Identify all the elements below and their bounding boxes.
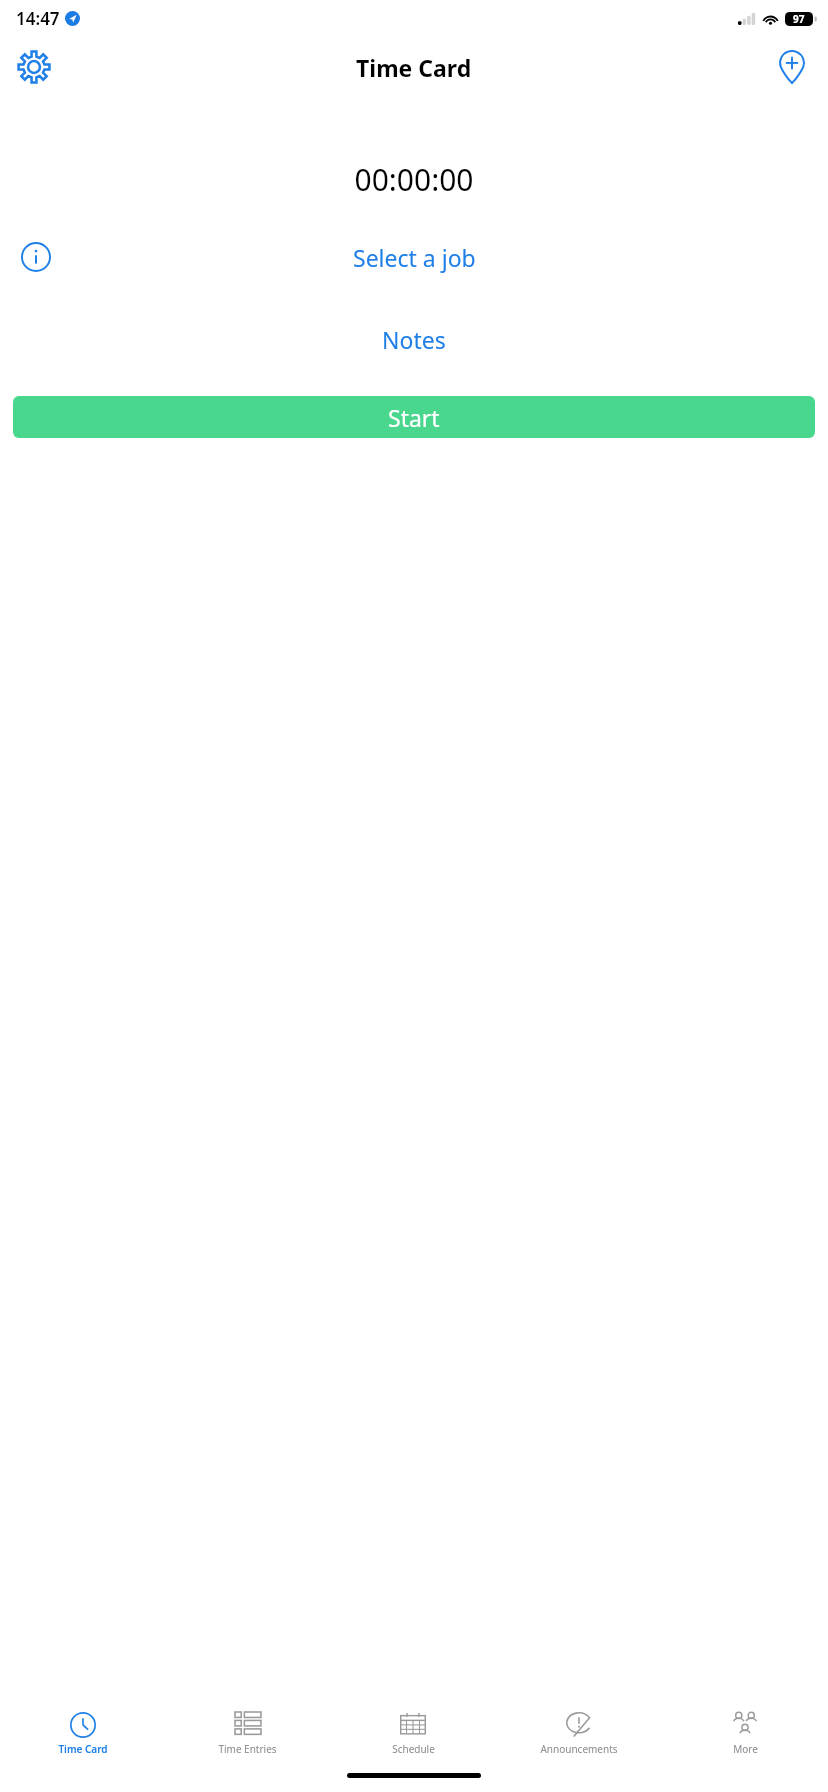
button[interactable]: Announcements: [496, 1702, 662, 1766]
staticText: Announcements: [540, 1742, 618, 1756]
staticText: 00:00:00: [354, 159, 474, 200]
staticText: 97: [793, 12, 805, 26]
button[interactable]: Notes: [360, 316, 468, 363]
button[interactable]: Start: [13, 396, 815, 438]
button[interactable]: Job information: [14, 235, 58, 279]
button[interactable]: Settings: [10, 43, 58, 91]
button[interactable]: More: [662, 1702, 828, 1766]
staticText: Time Entries: [218, 1742, 277, 1756]
staticText: Time Card: [356, 52, 472, 83]
button[interactable]: Time Card: [0, 1702, 165, 1766]
button[interactable]: Select a job: [335, 236, 494, 279]
button[interactable]: Schedule: [330, 1702, 496, 1766]
staticText: Start: [388, 402, 440, 433]
staticText: Time Card: [58, 1742, 108, 1756]
staticText: Select a job: [353, 242, 476, 273]
staticText: More: [733, 1742, 758, 1756]
staticText: 14:47: [16, 7, 60, 30]
button[interactable]: Add location: [768, 43, 816, 91]
button[interactable]: Time Entries: [165, 1702, 330, 1766]
staticText: Schedule: [392, 1742, 435, 1756]
staticText: Notes: [382, 324, 446, 355]
